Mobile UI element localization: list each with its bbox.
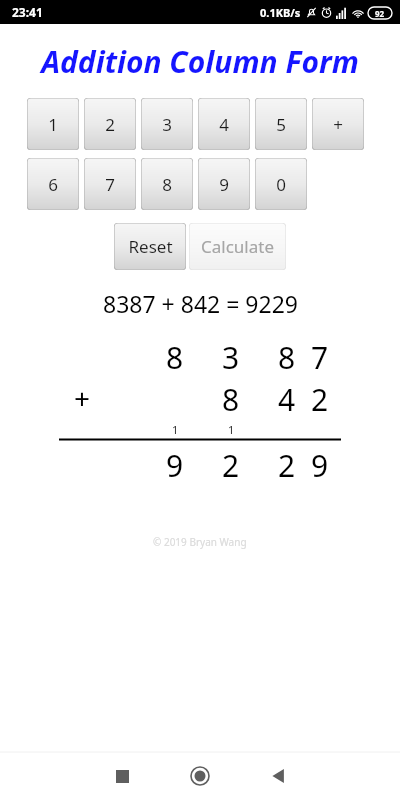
button[interactable]: 4 (198, 98, 250, 150)
button[interactable]: 5 (255, 98, 307, 150)
staticText: 9 (311, 445, 329, 479)
button[interactable]: Back (250, 752, 306, 800)
staticText: 2 (105, 113, 115, 136)
button[interactable]: + (312, 98, 364, 150)
staticText: 2 (222, 445, 240, 479)
staticText: 9 (166, 445, 184, 479)
staticText: 8387 + 842 = 9229 (103, 288, 298, 319)
button[interactable]: 7 (84, 158, 136, 210)
staticText: + (74, 379, 91, 413)
staticText: 4 (278, 379, 296, 413)
button[interactable]: Reset (114, 223, 186, 270)
button[interactable]: 2 (84, 98, 136, 150)
staticText: + (333, 113, 343, 136)
staticText: 3 (222, 337, 240, 371)
button[interactable]: Recents (94, 752, 150, 800)
staticText: 9 (219, 173, 229, 196)
button[interactable]: Home (172, 752, 228, 800)
staticText: 8 (222, 379, 240, 413)
staticText: 1 (172, 422, 179, 437)
staticText: 0.1KB/s (260, 5, 301, 20)
staticText: 23:41 (12, 4, 43, 20)
staticText: 0 (276, 173, 286, 196)
staticText: 2 (311, 379, 329, 413)
staticText: Calculate (201, 235, 274, 258)
staticText: 92 (375, 8, 385, 19)
staticText: 1 (228, 422, 235, 437)
staticText: © 2019 Bryan Wang (153, 535, 247, 549)
staticText: 6 (48, 173, 58, 196)
staticText: 3 (162, 113, 172, 136)
button[interactable]: 9 (198, 158, 250, 210)
button[interactable]: 8 (141, 158, 193, 210)
staticText: 8 (162, 173, 172, 196)
staticText: 5 (276, 113, 286, 136)
button[interactable]: 6 (27, 158, 79, 210)
button[interactable]: 1 (27, 98, 79, 150)
button[interactable]: Calculate (189, 223, 286, 270)
staticText: 2 (278, 445, 296, 479)
staticText: 4 (219, 113, 229, 136)
staticText: 7 (311, 337, 329, 371)
staticText: Reset (128, 235, 173, 258)
staticText: 8 (278, 337, 296, 371)
button[interactable]: 3 (141, 98, 193, 150)
staticText: 1 (48, 113, 58, 136)
staticText: 8 (166, 337, 184, 371)
button[interactable]: 0 (255, 158, 307, 210)
staticText: Addition Column Form (41, 41, 359, 82)
staticText: 7 (105, 173, 115, 196)
